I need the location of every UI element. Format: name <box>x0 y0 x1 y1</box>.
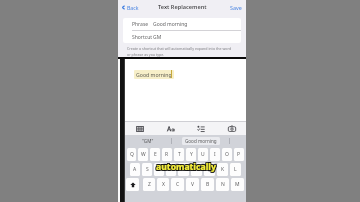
button[interactable]: Back <box>121 4 139 11</box>
button[interactable]: Q <box>127 148 136 161</box>
button[interactable]: Z <box>143 178 155 191</box>
button[interactable]: Phrase <box>123 18 241 30</box>
staticText: I <box>214 151 216 158</box>
staticText: R <box>165 151 169 158</box>
staticText: Good morning <box>136 71 172 78</box>
button[interactable]: Camera <box>226 123 237 134</box>
staticText: L <box>234 166 237 173</box>
staticText: E <box>154 151 157 158</box>
staticText: Back <box>127 4 139 11</box>
staticText: F <box>170 166 173 173</box>
button[interactable]: G <box>178 163 189 176</box>
button[interactable]: Good morning <box>172 135 229 146</box>
button[interactable]: F <box>166 163 176 176</box>
staticText: Y <box>190 151 193 158</box>
staticText: W <box>141 151 146 158</box>
staticText: U <box>201 151 205 158</box>
button[interactable]: L <box>230 163 241 176</box>
button[interactable]: N <box>216 178 229 191</box>
button[interactable]: T <box>174 148 184 161</box>
button[interactable]: Y <box>186 148 196 161</box>
staticText: automatically <box>156 161 216 173</box>
staticText: automatically <box>155 162 215 174</box>
staticText: M <box>235 181 240 188</box>
staticText: Phrase <box>132 21 149 28</box>
button[interactable]: "GM" <box>125 135 171 146</box>
staticText: Good morning <box>185 138 217 144</box>
button[interactable]: O <box>222 148 232 161</box>
button[interactable]: M <box>231 178 244 191</box>
button[interactable]: Shortcut <box>123 31 241 43</box>
staticText: Text Replacement <box>158 3 207 11</box>
button[interactable]: P <box>234 148 244 161</box>
staticText: X <box>162 181 165 188</box>
staticText: N <box>221 181 225 188</box>
button[interactable]: Save <box>230 4 242 11</box>
button[interactable]: E <box>150 148 160 161</box>
staticText: automatically <box>157 161 217 173</box>
button[interactable]: W <box>138 148 148 161</box>
staticText: B <box>206 181 210 188</box>
button[interactable]: H <box>191 163 202 176</box>
staticText: G <box>182 166 186 173</box>
staticText: P <box>237 151 241 158</box>
button[interactable]: Shift <box>126 178 139 191</box>
staticText: "GM" <box>142 138 154 144</box>
staticText: Create a shortcut that will automaticall… <box>127 46 232 51</box>
staticText: Good morning <box>153 21 188 28</box>
staticText: K <box>221 166 225 173</box>
button[interactable]: D <box>154 163 164 176</box>
button[interactable]: I <box>210 148 220 161</box>
staticText: automatically <box>156 162 216 174</box>
button[interactable]: S <box>142 163 152 176</box>
staticText: automatically <box>157 160 217 172</box>
staticText: automatically <box>155 161 215 173</box>
staticText: GM <box>153 34 162 41</box>
staticText: H <box>195 166 199 173</box>
button[interactable]: V <box>186 178 199 191</box>
staticText: D <box>157 166 161 173</box>
button[interactable]: Checklist <box>195 123 206 134</box>
staticText: C <box>176 181 180 188</box>
button[interactable]: R <box>162 148 172 161</box>
staticText: J <box>209 166 211 173</box>
staticText: S <box>146 166 149 173</box>
staticText: T <box>178 151 181 158</box>
button[interactable]: C <box>171 178 184 191</box>
staticText: Q <box>130 151 134 158</box>
button[interactable]: U <box>198 148 208 161</box>
staticText: V <box>191 181 195 188</box>
button[interactable]: J <box>204 163 215 176</box>
button[interactable]: K <box>217 163 228 176</box>
button[interactable]: A <box>130 163 140 176</box>
button[interactable]: Text format <box>165 123 176 134</box>
button[interactable]: B <box>201 178 214 191</box>
staticText: automatically <box>155 160 215 172</box>
button[interactable]: X <box>157 178 169 191</box>
staticText: Save <box>230 4 242 11</box>
button[interactable]: Table <box>134 123 145 134</box>
staticText: Z <box>148 181 151 188</box>
staticText: or phrase as you type. <box>127 52 165 57</box>
staticText: Shortcut <box>132 34 153 41</box>
staticText: automatically <box>156 160 216 172</box>
staticText: automatically <box>157 162 217 174</box>
staticText: O <box>225 151 229 158</box>
staticText: A <box>133 166 137 173</box>
